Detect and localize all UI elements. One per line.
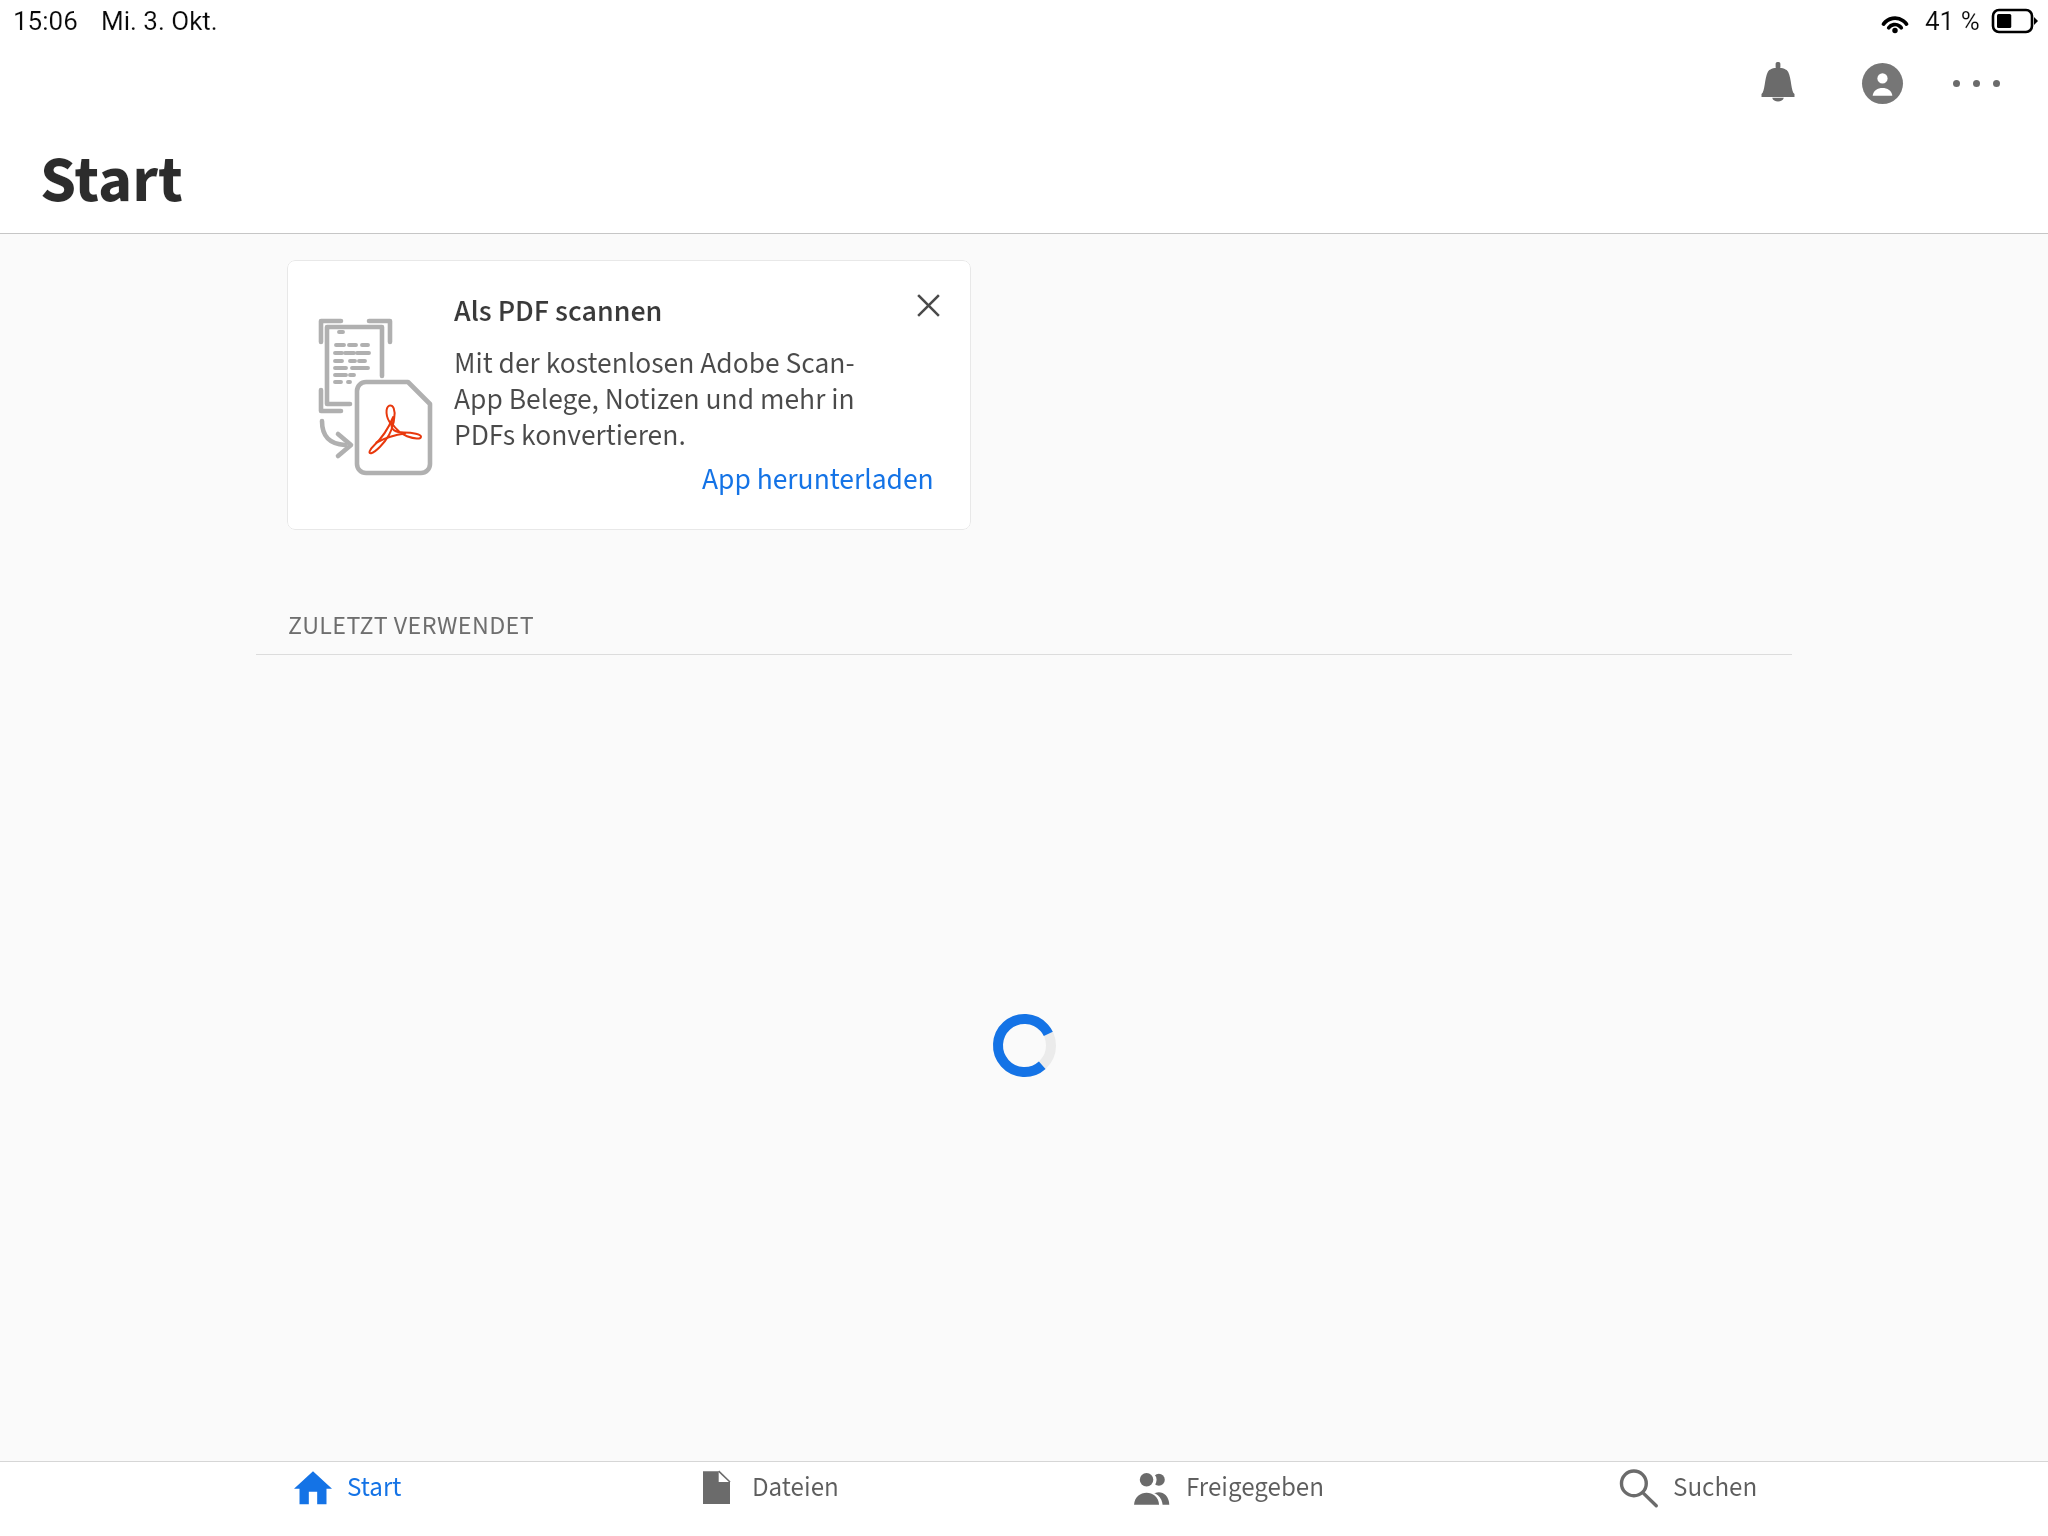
button[interactable]: Weitere Optionen xyxy=(1930,37,2022,129)
staticText: App herunterladen xyxy=(702,459,934,501)
button[interactable]: Als PDF scannen xyxy=(287,260,971,530)
staticText: 15:06 xyxy=(13,6,78,36)
button[interactable]: Start xyxy=(274,1450,420,1524)
staticText: Start xyxy=(40,134,183,227)
button[interactable]: Dateien xyxy=(683,1450,855,1524)
button[interactable]: Schließen xyxy=(905,282,951,328)
staticText: Dateien xyxy=(752,1468,839,1506)
staticText: Start xyxy=(347,1468,402,1506)
staticText: Mit der kostenlosen Adobe Scan- App Bele… xyxy=(454,343,855,457)
staticText: Freigegeben xyxy=(1186,1468,1325,1506)
button[interactable]: Profil xyxy=(1836,37,1928,129)
button[interactable]: Freigegeben xyxy=(1112,1450,1392,1524)
staticText: ZULETZT VERWENDET xyxy=(288,607,534,644)
staticText: Suchen xyxy=(1673,1468,1758,1506)
staticText: Mi. 3. Okt. xyxy=(101,6,218,36)
button[interactable]: App herunterladen xyxy=(702,459,934,501)
button[interactable]: Suchen xyxy=(1600,1450,1775,1524)
staticText: Als PDF scannen xyxy=(454,290,663,333)
staticText: 41 % xyxy=(1925,6,1980,36)
button[interactable]: Benachrichtigungen xyxy=(1732,36,1824,128)
